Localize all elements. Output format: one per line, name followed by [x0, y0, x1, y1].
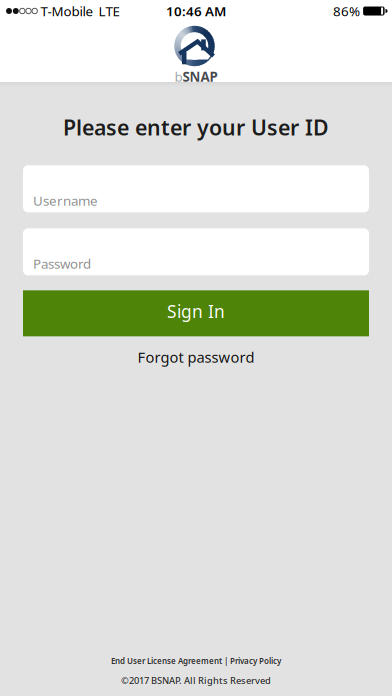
staticText: Forgot password	[137, 347, 254, 367]
staticText: LTE	[98, 2, 119, 20]
staticText: End User License Agreement | Privacy Pol…	[111, 655, 281, 666]
staticText: 86%	[333, 2, 360, 20]
button[interactable]: Username	[23, 165, 369, 212]
staticText: Sign In	[167, 300, 225, 323]
staticText: b	[174, 68, 182, 85]
staticText: Username	[33, 192, 98, 209]
button[interactable]: End User License Agreement | Privacy Pol…	[111, 655, 281, 666]
staticText: T-Mobile	[40, 2, 93, 20]
button[interactable]: Forgot password	[137, 347, 254, 367]
staticText: ©2017 BSNAP. All Rights Reserved	[121, 674, 271, 686]
button[interactable]: Sign In	[23, 290, 369, 336]
staticText: 10:46 AM	[166, 2, 226, 20]
staticText: Password	[33, 255, 91, 272]
staticText: SNAP	[182, 68, 217, 85]
button[interactable]: Password	[23, 228, 369, 275]
staticText: Please enter your User ID	[63, 113, 329, 141]
